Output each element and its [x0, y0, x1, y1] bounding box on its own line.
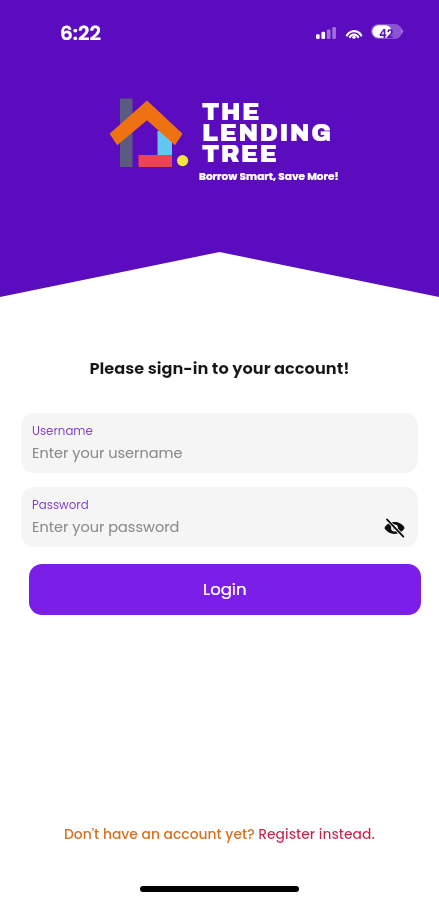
button[interactable]: Password [21, 487, 418, 547]
staticText: Enter your username [32, 443, 183, 463]
staticText: LENDING [202, 120, 333, 146]
staticText: Enter your password [32, 517, 180, 537]
staticText: Don't have an account yet? Register inst… [64, 824, 375, 843]
button[interactable]: Username [21, 413, 418, 473]
staticText: THE [202, 99, 261, 125]
staticText: Password [32, 497, 89, 514]
button[interactable]: Login [29, 564, 421, 615]
staticText: Login [203, 578, 247, 601]
button[interactable]: Don't have an account yet? Register inst… [58, 818, 381, 849]
staticText: 6:22 [60, 19, 102, 47]
button[interactable]: Toggle password visibility [379, 513, 409, 543]
staticText: Borrow Smart, Save More! [199, 169, 339, 184]
staticText: 42 [379, 26, 394, 42]
staticText: Please sign-in to your account! [0, 357, 439, 380]
staticText: TREE [202, 141, 279, 167]
staticText: Username [32, 423, 93, 440]
